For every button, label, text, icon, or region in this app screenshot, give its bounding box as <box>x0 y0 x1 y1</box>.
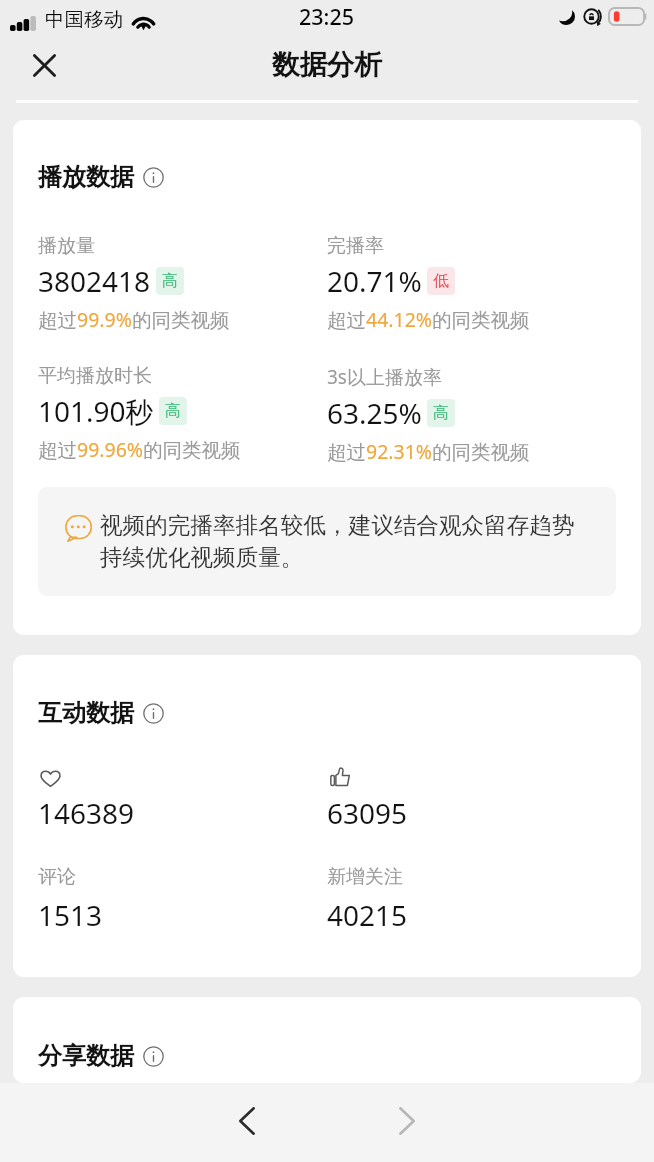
staticText: 23:25 <box>299 2 355 31</box>
staticText: 146389 <box>38 794 135 832</box>
staticText: 超过99.9%的同类视频 <box>38 306 230 333</box>
staticText: 互动数据 <box>38 698 134 728</box>
staticText: 超过44.12%的同类视频 <box>327 306 530 333</box>
staticText: 评论 <box>38 865 76 889</box>
button[interactable]: Forward <box>375 1089 439 1153</box>
staticText: 3802418 <box>38 262 151 300</box>
staticText: 播放量 <box>38 234 95 258</box>
staticText: 低 <box>433 271 449 291</box>
staticText: 1513 <box>38 896 103 934</box>
button[interactable]: 播放数据 <box>38 162 164 192</box>
staticText: 完播率 <box>327 234 384 258</box>
staticText: 新增关注 <box>327 865 403 889</box>
button[interactable]: Close <box>21 42 67 88</box>
staticText: 高 <box>165 401 181 421</box>
staticText: 3s以上播放率 <box>327 364 442 390</box>
staticText: 63.25% <box>327 394 422 432</box>
staticText: 平均播放时长 <box>38 364 152 388</box>
staticText: 超过92.31%的同类视频 <box>327 438 530 465</box>
staticText: 20.71% <box>327 262 422 300</box>
staticText: 高 <box>162 271 178 291</box>
staticText: 数据分析 <box>272 48 382 83</box>
staticText: 101.90秒 <box>38 392 154 430</box>
staticText: 播放数据 <box>38 162 134 192</box>
staticText: 视频的完播率排名较低，建议结合观众留存趋势 持续优化视频质量。 <box>100 511 575 572</box>
staticText: 中国移动 <box>45 7 123 32</box>
staticText: 分享数据 <box>38 1041 134 1071</box>
staticText: 40215 <box>327 896 408 934</box>
button[interactable]: 互动数据 <box>38 698 164 728</box>
staticText: 高 <box>433 403 449 423</box>
button[interactable]: Back <box>215 1089 279 1153</box>
button[interactable]: 分享数据 <box>38 1041 164 1071</box>
staticText: 63095 <box>327 794 408 832</box>
staticText: 超过99.96%的同类视频 <box>38 436 241 463</box>
